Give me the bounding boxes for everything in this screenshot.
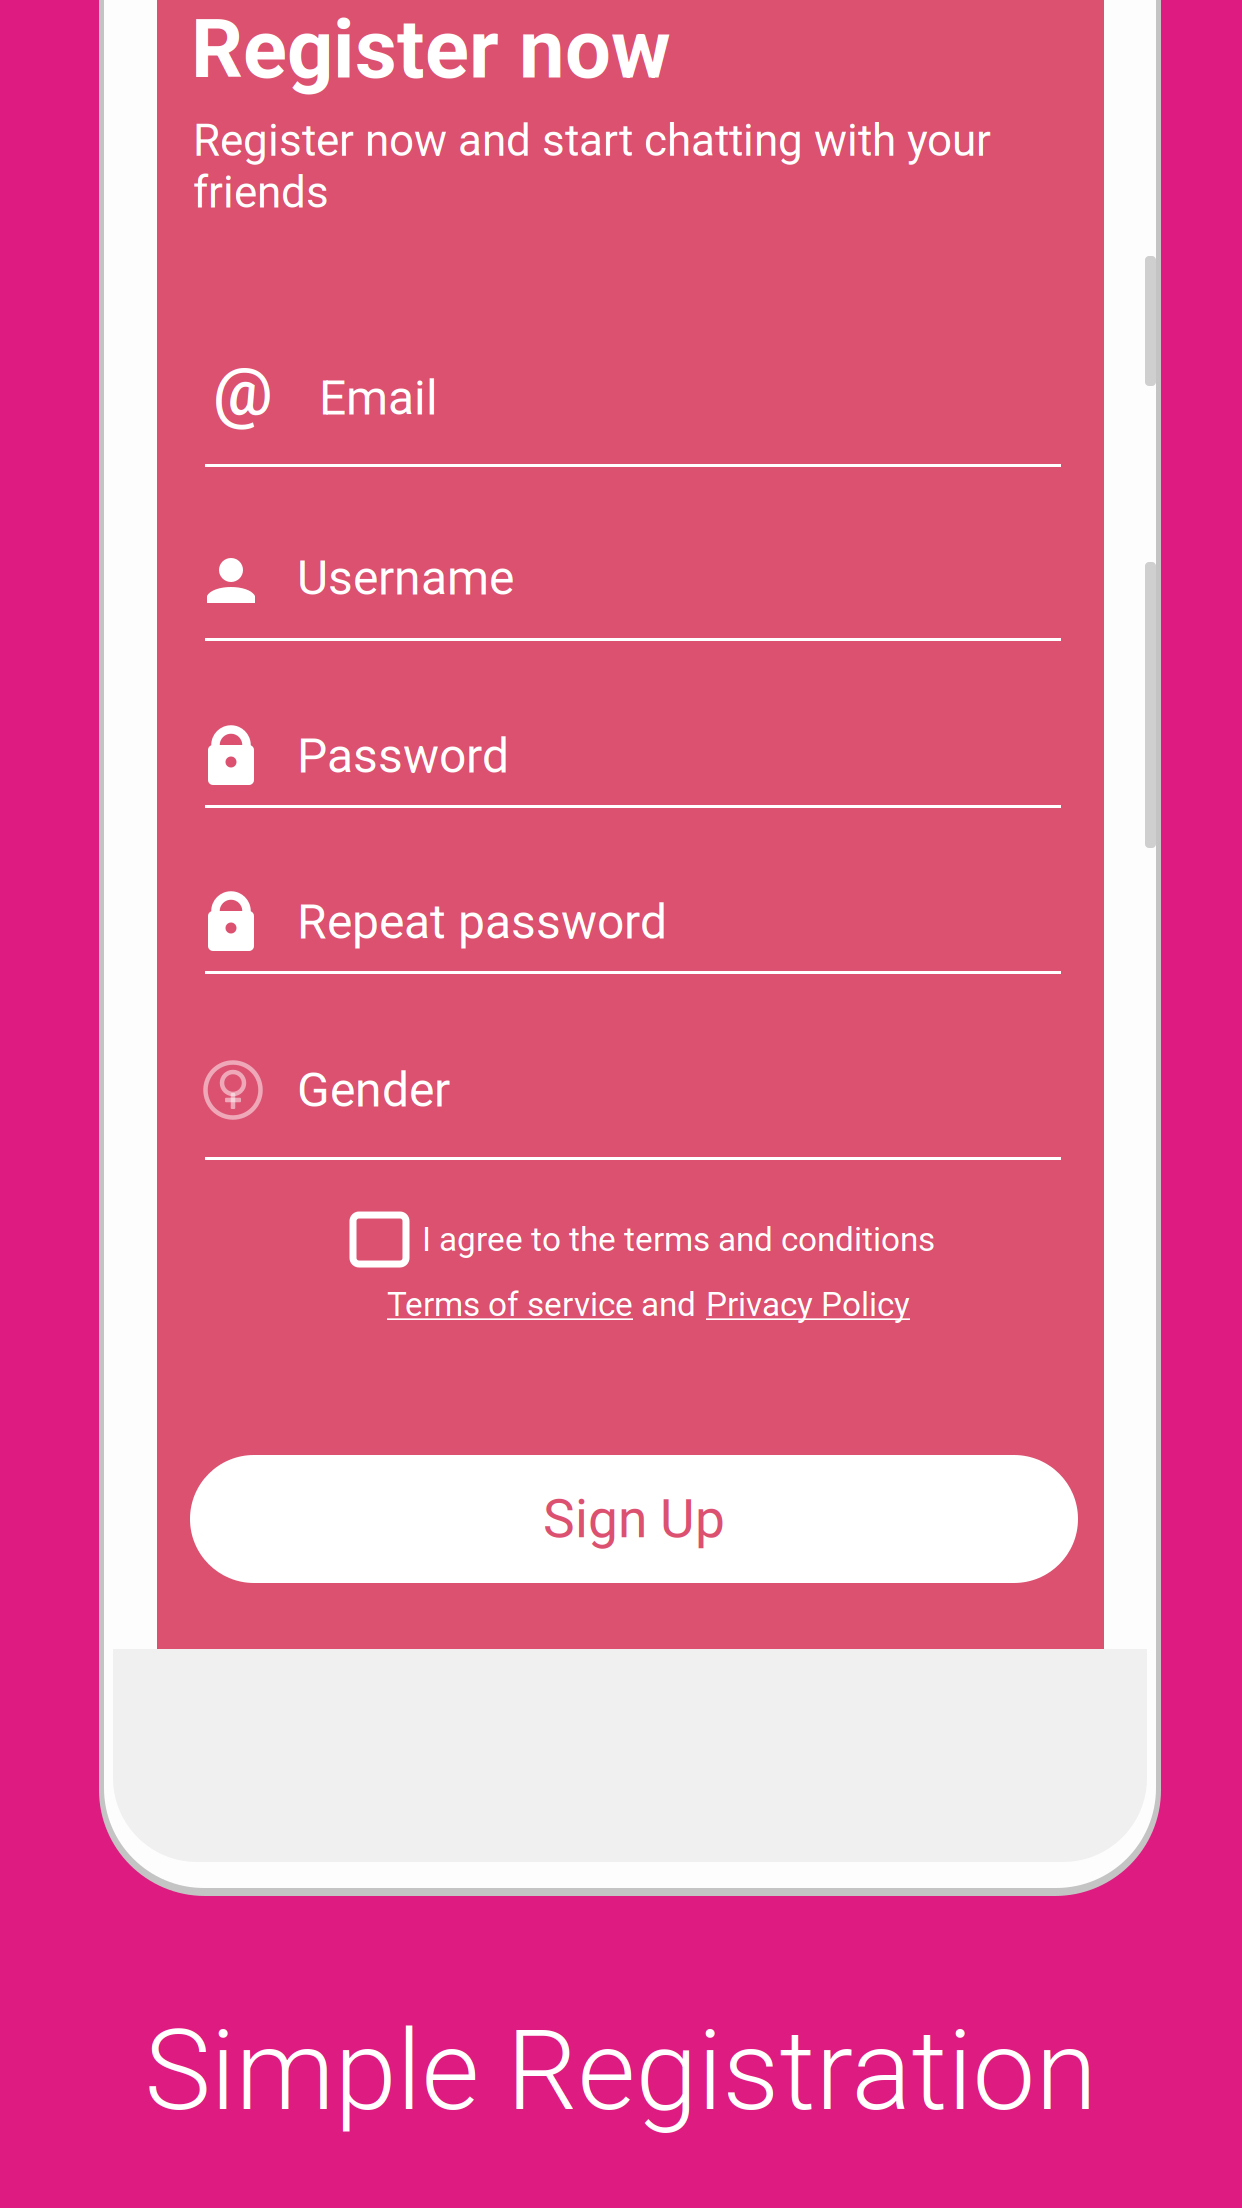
staticText: Terms of service	[387, 1285, 633, 1324]
staticText: and	[633, 1285, 704, 1324]
button[interactable]: @	[205, 371, 1061, 490]
button[interactable]: Gender	[205, 1063, 1061, 1183]
button[interactable]: I agree to the terms and conditions	[353, 1211, 935, 1268]
staticText: Privacy Policy	[706, 1285, 910, 1324]
staticText: Register now	[191, 2, 671, 97]
button[interactable]: Terms of service	[387, 1285, 633, 1324]
button[interactable]: Password	[205, 729, 1061, 831]
staticText: Username	[297, 550, 514, 606]
button[interactable]: Username	[205, 551, 1061, 664]
staticText: @	[213, 353, 273, 431]
staticText: Password	[297, 728, 509, 784]
button[interactable]: Sign Up	[190, 1455, 1078, 1583]
staticText: Email	[319, 370, 438, 426]
staticText: Simple Registration	[144, 2005, 1097, 2136]
button[interactable]: Repeat password	[205, 895, 1061, 997]
staticText: Repeat password	[297, 894, 667, 950]
staticText: Register now and start chatting with you…	[193, 115, 991, 218]
staticText: Gender	[297, 1062, 450, 1118]
staticText: Sign Up	[543, 1488, 725, 1550]
staticText: I agree to the terms and conditions	[422, 1220, 935, 1259]
button[interactable]: Privacy Policy	[706, 1285, 910, 1324]
